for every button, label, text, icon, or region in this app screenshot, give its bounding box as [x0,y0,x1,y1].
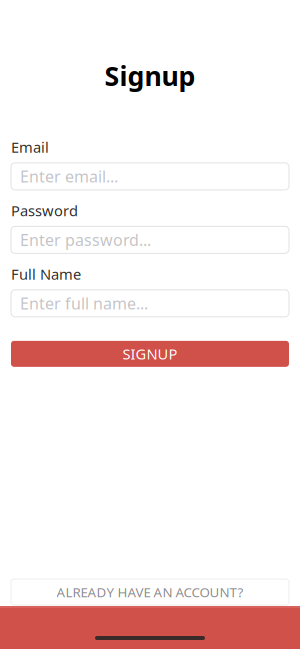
staticText: ALREADY HAVE AN ACCOUNT? [56,583,243,601]
staticText: Email [11,137,49,157]
staticText: SIGNUP [122,344,177,364]
staticText: Full Name [11,264,81,284]
button[interactable]: ALREADY HAVE AN ACCOUNT? [11,579,289,605]
staticText: Signup [104,58,195,93]
button[interactable]: SIGNUP [11,341,289,367]
staticText: Enter full name... [20,293,148,314]
staticText: Enter email... [20,166,118,187]
staticText: Enter password... [20,229,151,250]
staticText: Password [11,201,78,220]
